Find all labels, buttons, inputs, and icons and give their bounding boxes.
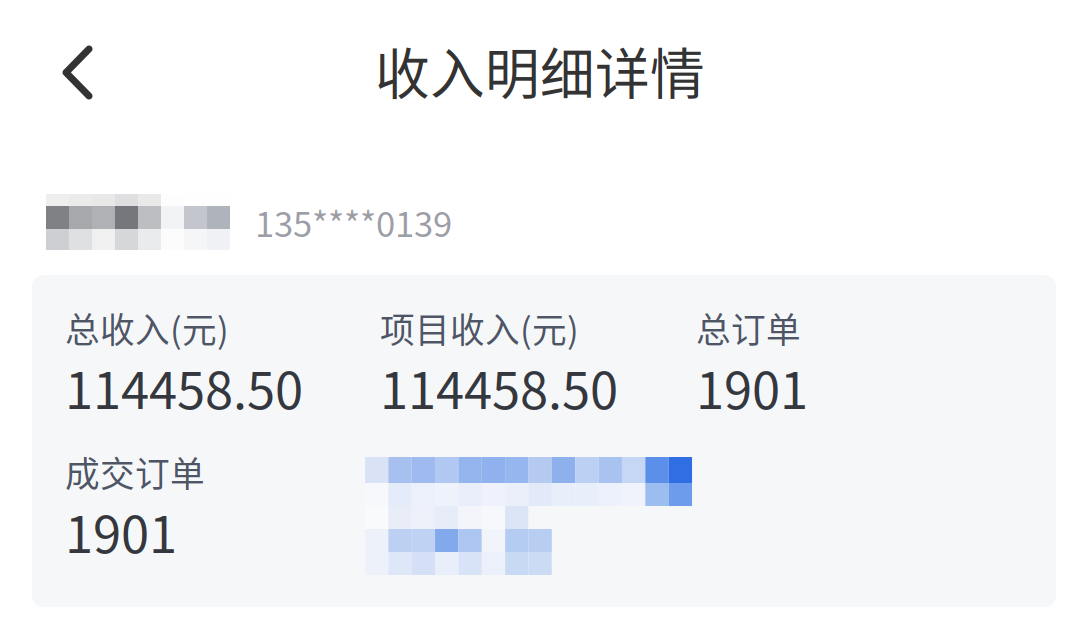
staticText: 成交订单 [65, 447, 205, 497]
button[interactable]: Back [0, 18, 123, 122]
staticText: 1901 [696, 350, 808, 424]
staticText: 135****0139 [255, 197, 452, 247]
staticText: 114458.50 [65, 350, 303, 424]
staticText: 总订单 [696, 303, 801, 353]
staticText: 1901 [65, 494, 177, 568]
staticText: 总收入(元) [65, 303, 229, 353]
staticText: 收入明细详情 [375, 30, 705, 110]
staticText: 114458.50 [380, 350, 618, 424]
staticText: 项目收入(元) [380, 303, 579, 353]
